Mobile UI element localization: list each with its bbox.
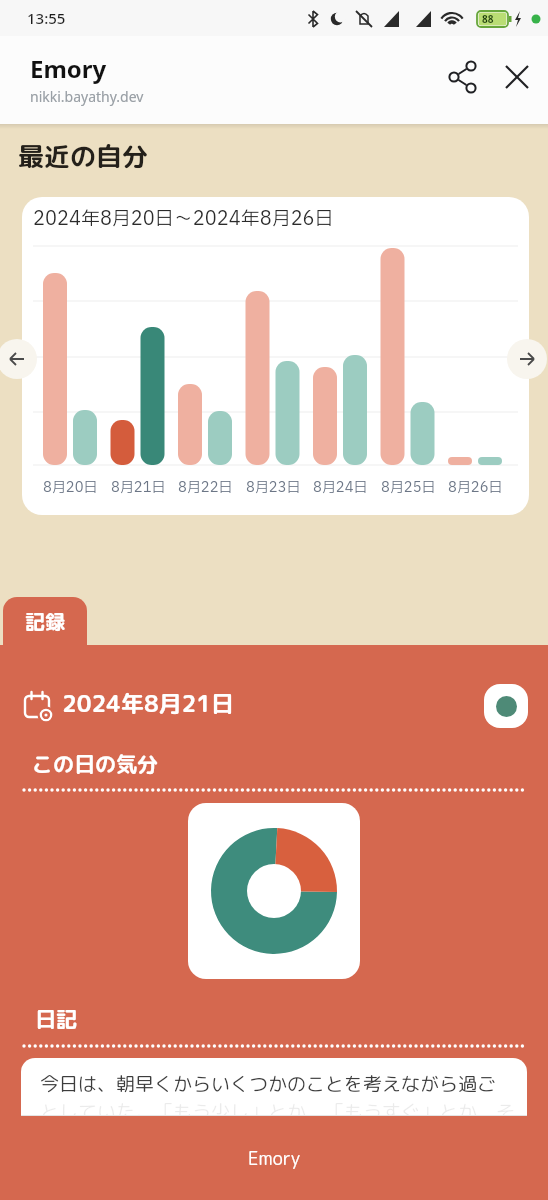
staticText: nikki.bayathy.dev [30,87,144,106]
staticText: 最近の自分 [18,138,149,174]
staticText: 13:55 [27,8,66,28]
staticText: 8月25日 [381,477,436,498]
button[interactable] [495,55,539,99]
staticText: としていた。「もう少し」とか、「もうすぐ」とか、そ [40,1099,516,1116]
staticText: この日の気分 [32,749,158,778]
staticText: 8月22日 [178,477,233,498]
button[interactable]: 記録 [3,597,87,645]
staticText: 2024年8月20日～2024年8月26日 [33,205,334,233]
staticText: 8月21日 [111,477,166,498]
staticText: 8月24日 [313,477,368,498]
button[interactable] [441,55,485,99]
staticText: 8月26日 [448,477,503,498]
button[interactable] [0,339,37,379]
staticText: Emory [248,1146,301,1171]
staticText: 88 [482,12,494,26]
button[interactable] [507,339,547,379]
staticText: 2024年8月21日 [62,687,235,719]
staticText: 8月23日 [246,477,301,498]
staticText: Emory [30,52,107,85]
button[interactable] [484,684,528,728]
staticText: 日記 [35,1004,77,1033]
button[interactable] [188,803,360,979]
staticText: 8月20日 [43,477,98,498]
button[interactable]: 今日は、朝早くからいくつかのことを考えながら過ご [21,1058,527,1116]
staticText: 今日は、朝早くからいくつかのことを考えながら過ご [40,1071,497,1098]
staticText: 記録 [25,607,65,635]
